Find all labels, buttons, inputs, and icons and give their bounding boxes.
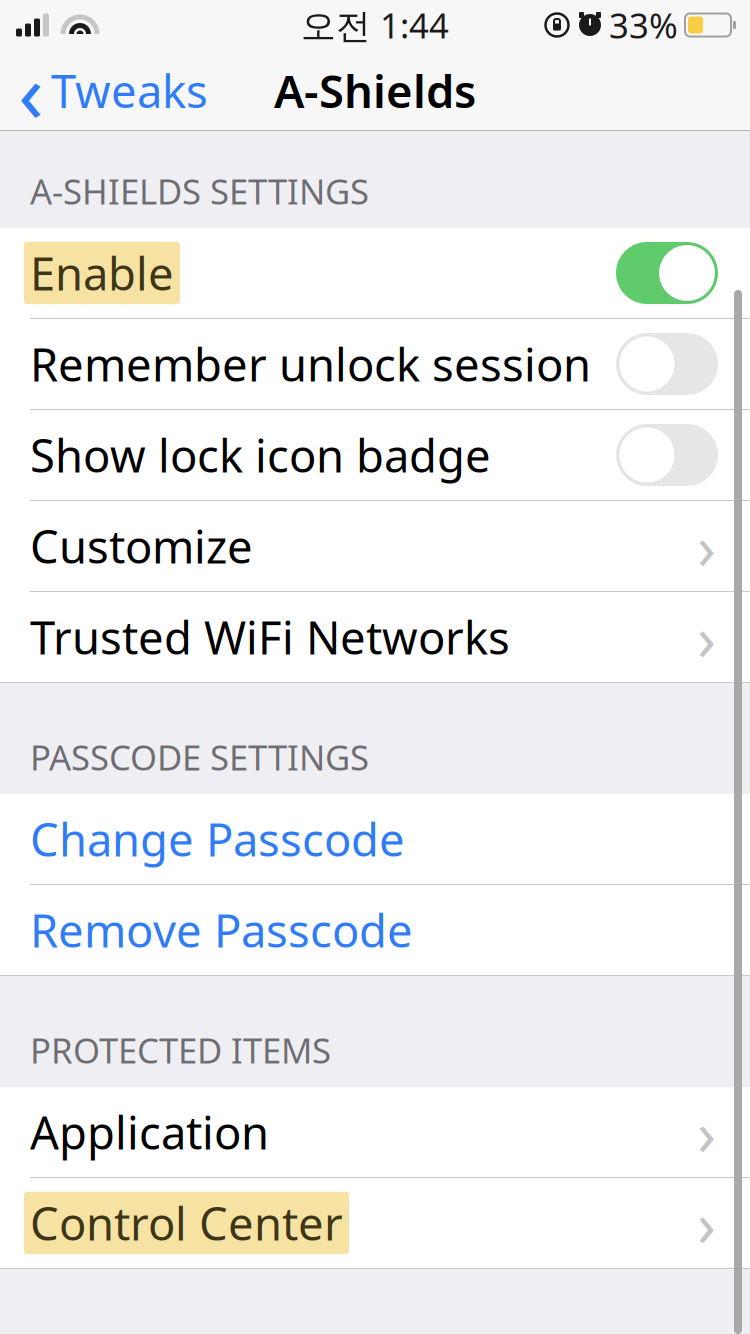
staticText: Tweaks <box>51 60 208 121</box>
staticText: Application <box>30 1102 269 1162</box>
button[interactable]: Control Center <box>0 1178 750 1268</box>
staticText: Show lock icon badge <box>30 425 491 485</box>
button[interactable]: Trusted WiFi Networks <box>0 592 750 682</box>
staticText: › <box>697 596 716 678</box>
button[interactable]: Remember unlock session <box>0 319 750 409</box>
staticText: A-Shields <box>274 60 476 121</box>
staticText: 33% <box>609 2 678 48</box>
staticText: › <box>697 1182 716 1264</box>
staticText: Remember unlock session <box>30 334 591 394</box>
staticText: Remove Passcode <box>30 900 413 960</box>
staticText: Change Passcode <box>30 809 405 869</box>
staticText: › <box>697 505 716 587</box>
button[interactable]: Remove Passcode <box>0 885 750 975</box>
staticText: Trusted WiFi Networks <box>30 607 510 667</box>
staticText: Customize <box>30 516 253 576</box>
button[interactable]: Customize <box>0 501 750 591</box>
staticText: PASSCODE SETTINGS <box>30 734 369 780</box>
staticText: PROTECTED ITEMS <box>30 1027 331 1073</box>
button[interactable]: ‹ <box>0 28 208 153</box>
staticText: 오전 1:44 <box>301 2 449 48</box>
staticText: Enable <box>30 243 174 303</box>
staticText: A-SHIELDS SETTINGS <box>30 168 369 214</box>
button[interactable]: Enable <box>0 228 750 318</box>
staticText: Control Center <box>30 1193 343 1253</box>
staticText: ‹ <box>18 36 44 145</box>
button[interactable]: Show lock icon badge <box>0 410 750 500</box>
staticText: › <box>697 1091 716 1173</box>
button[interactable]: Application <box>0 1087 750 1177</box>
button[interactable]: Change Passcode <box>0 794 750 884</box>
